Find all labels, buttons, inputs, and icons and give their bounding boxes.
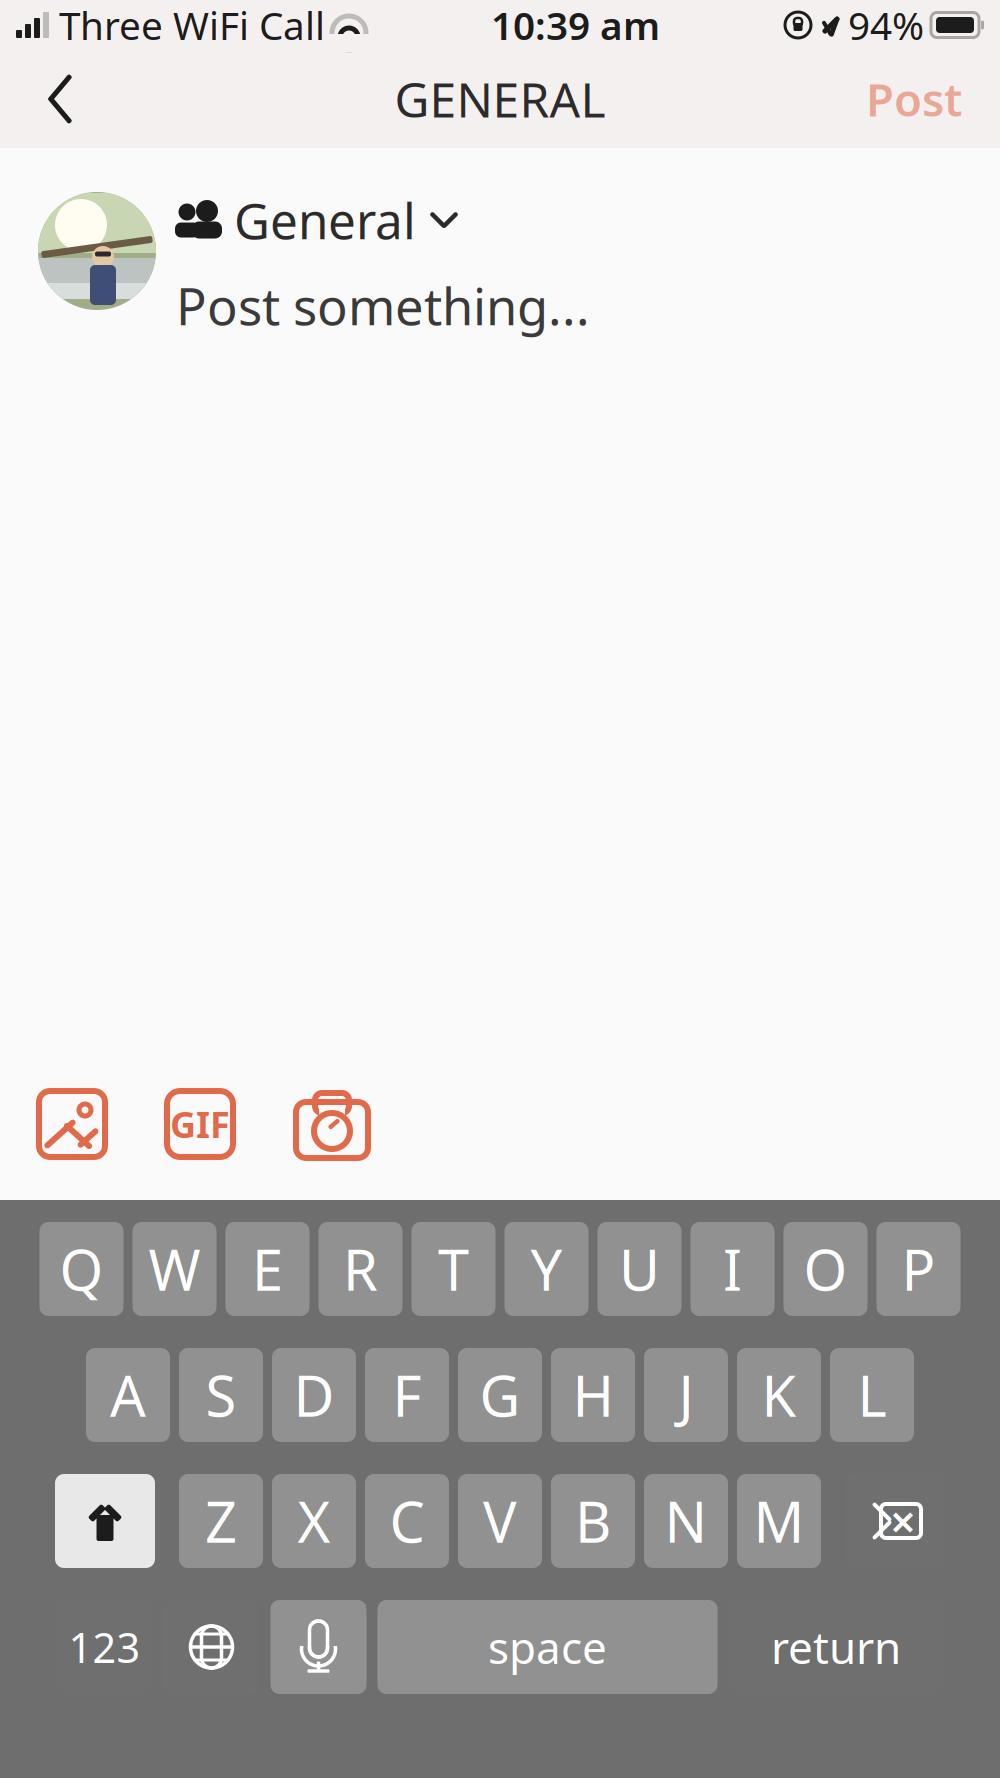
staticText: L [857,1358,886,1432]
staticText: 123 [68,1620,140,1674]
staticText: R [343,1232,378,1306]
button[interactable]: Add GIF [164,1088,236,1160]
staticText: Y [530,1232,562,1306]
staticText: K [761,1358,796,1432]
staticText: General [234,187,416,253]
button[interactable]: Q [39,1222,123,1316]
button[interactable]: H [551,1348,635,1442]
staticText: × [890,1491,916,1551]
button[interactable]: P [876,1222,960,1316]
button[interactable]: S [179,1348,263,1442]
staticText: P [901,1232,935,1306]
staticText: space [488,1618,607,1676]
staticText: return [771,1618,901,1676]
button[interactable]: Z [179,1474,263,1568]
button[interactable]: R [318,1222,402,1316]
button[interactable]: D [272,1348,356,1442]
button[interactable]: A [86,1348,170,1442]
button[interactable]: Back [20,55,100,143]
button[interactable]: G [458,1348,542,1442]
button[interactable]: J [644,1348,728,1442]
button[interactable]: M [737,1474,821,1568]
staticText: Post something... [176,272,590,339]
button[interactable]: Add photo [36,1088,108,1160]
staticText: N [664,1484,707,1558]
button[interactable]: U [597,1222,681,1316]
staticText: W [148,1232,200,1306]
button[interactable]: Next keyboard [163,1600,259,1694]
staticText: GIF [170,1100,230,1148]
button[interactable]: Shift [55,1474,155,1568]
button[interactable]: Profile photo [38,192,156,310]
staticText: Q [59,1232,103,1306]
staticText: V [483,1484,517,1558]
button[interactable]: L [830,1348,914,1442]
button[interactable]: Dictate [270,1600,366,1694]
button[interactable]: I [690,1222,774,1316]
staticText: T [438,1232,469,1306]
staticText: 94% [848,0,924,51]
button[interactable]: X [272,1474,356,1568]
button[interactable]: Y [504,1222,588,1316]
staticText: S [205,1358,236,1432]
staticText: Z [205,1484,237,1558]
staticText: X [297,1484,330,1558]
staticText: GENERAL [394,67,605,131]
button[interactable]: K [737,1348,821,1442]
staticText: 10:39 am [491,0,660,51]
button[interactable]: W [132,1222,216,1316]
staticText: E [252,1232,283,1306]
button[interactable]: space [377,1600,717,1694]
staticText: M [753,1484,804,1558]
staticText: D [293,1358,334,1432]
button[interactable]: Delete [845,1474,945,1568]
button[interactable]: T [411,1222,495,1316]
staticText: Post [866,69,962,129]
button[interactable]: B [551,1474,635,1568]
staticText: U [619,1232,660,1306]
button[interactable]: Post [848,55,980,143]
button[interactable]: O [783,1222,867,1316]
staticText: H [572,1358,613,1432]
button[interactable]: 123 [56,1600,152,1694]
staticText: O [803,1232,847,1306]
button[interactable]: N [644,1474,728,1568]
button[interactable]: return [728,1600,943,1694]
button[interactable]: General [176,192,458,248]
staticText: I [723,1232,742,1306]
staticText: F [392,1358,421,1432]
staticText: G [479,1358,520,1432]
staticText: A [110,1358,146,1432]
button[interactable]: E [225,1222,309,1316]
button[interactable]: F [365,1348,449,1442]
staticText: B [575,1484,611,1558]
button[interactable]: C [365,1474,449,1568]
staticText: C [389,1484,424,1558]
staticText: Three WiFi Call [59,0,325,51]
button[interactable]: Take photo [292,1088,372,1160]
button[interactable]: V [458,1474,542,1568]
staticText: J [678,1358,693,1432]
